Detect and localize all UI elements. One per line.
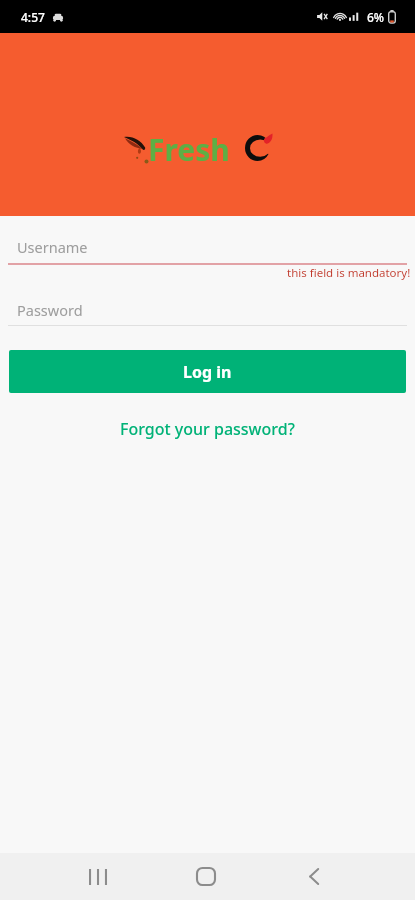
button[interactable]: Recent apps [68, 853, 128, 900]
staticText: Fresh [148, 129, 230, 169]
staticText: Username [17, 237, 88, 257]
button[interactable]: Back [284, 853, 344, 900]
staticText: Forgot your password? [120, 418, 295, 440]
button[interactable]: Forgot your password? [120, 418, 295, 440]
staticText: 6% [367, 9, 385, 25]
staticText: this field is mandatory! [287, 265, 411, 281]
button[interactable]: Home [176, 853, 236, 900]
staticText: Log in [183, 361, 232, 383]
staticText: Password [17, 300, 83, 320]
staticText: 4:57 [21, 9, 45, 25]
button[interactable]: Log in [9, 350, 406, 393]
button[interactable]: Username [0, 227, 415, 263]
button[interactable]: Password [0, 291, 415, 325]
